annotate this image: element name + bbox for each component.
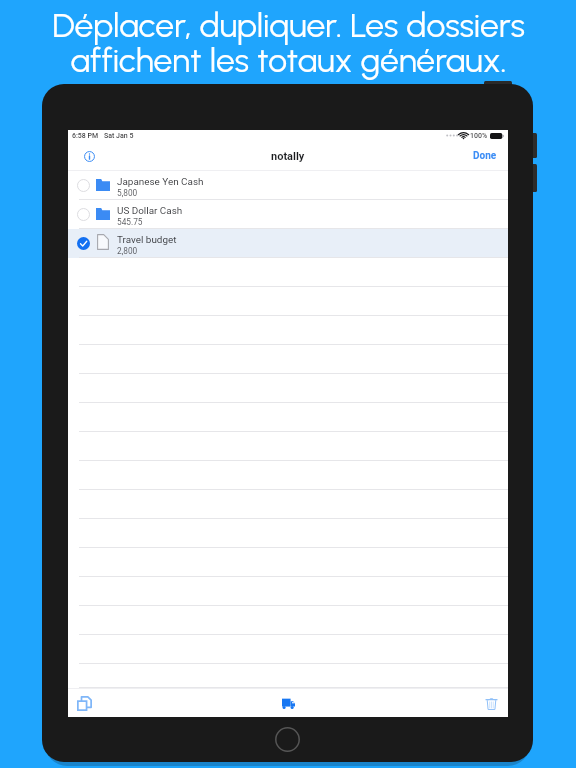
- staticText: Japanese Yen Cash: [117, 176, 204, 188]
- staticText: Travel budget: [117, 234, 177, 246]
- button[interactable]: Done: [473, 150, 497, 162]
- button[interactable]: Move: [277, 692, 299, 714]
- staticText: 2,800: [117, 246, 138, 256]
- staticText: Done: [473, 150, 497, 162]
- button[interactable]: Info: [80, 147, 98, 165]
- button[interactable]: Delete: [480, 692, 502, 714]
- staticText: 100%: [470, 132, 488, 140]
- staticText: Sat Jan 5: [104, 132, 134, 140]
- staticText: 5,800: [117, 188, 138, 198]
- button[interactable]: Duplicate: [73, 692, 95, 714]
- button[interactable]: Japanese Yen Cash: [68, 171, 508, 200]
- button[interactable]: US Dollar Cash: [68, 200, 508, 229]
- staticText: 6:58 PM: [72, 132, 99, 140]
- button[interactable]: Travel budget: [68, 229, 508, 258]
- staticText: notally: [271, 150, 305, 163]
- staticText: 545.75: [117, 217, 143, 227]
- staticText: US Dollar Cash: [117, 205, 183, 217]
- staticText: Déplacer, dupliquer. Les dossiers affich…: [52, 5, 525, 80]
